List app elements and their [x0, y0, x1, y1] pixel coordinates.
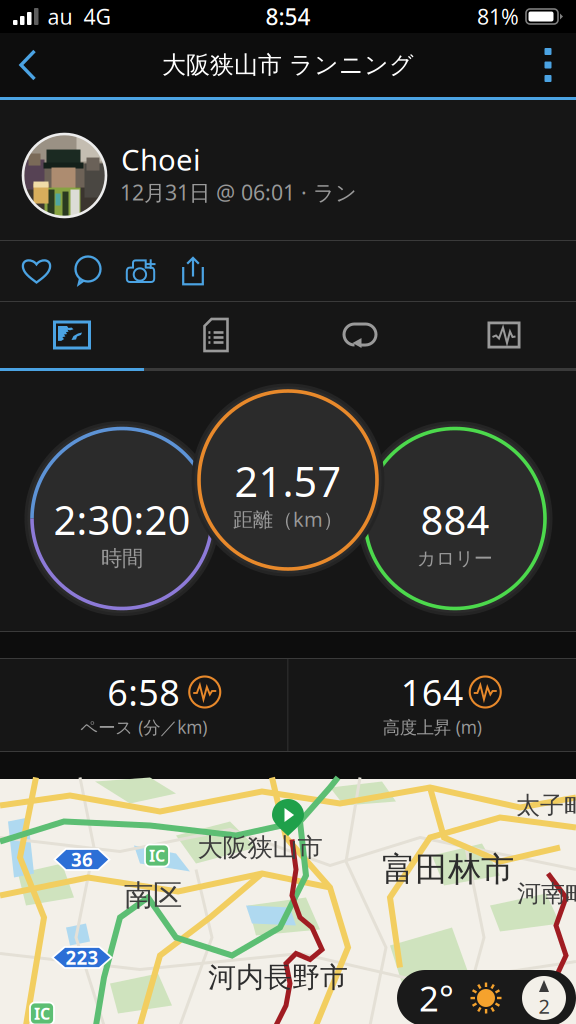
- staticText: 2: [538, 993, 549, 1019]
- staticText: 4G: [83, 2, 111, 31]
- button[interactable]: Comment: [62, 240, 115, 302]
- staticText: 2:30:20: [53, 493, 190, 546]
- staticText: Choei: [121, 140, 201, 179]
- staticText: 164: [401, 668, 464, 716]
- staticText: 富田林市: [382, 849, 514, 890]
- staticText: 高度上昇 (m): [383, 715, 482, 738]
- staticText: カロリー: [417, 547, 493, 570]
- staticText: 81%: [477, 2, 519, 31]
- staticText: 2°: [419, 975, 454, 1021]
- staticText: 河内長野市: [208, 960, 348, 995]
- button[interactable]: Splits: [144, 302, 288, 368]
- staticText: 大阪狭山市: [197, 832, 322, 863]
- staticText: au: [47, 2, 72, 31]
- staticText: 36: [71, 847, 93, 872]
- staticText: ペース (分／km): [80, 715, 207, 738]
- staticText: 8:54: [265, 1, 310, 31]
- button[interactable]: Laps: [288, 302, 432, 368]
- button[interactable]: Analysis: [432, 302, 576, 368]
- button[interactable]: Share: [167, 240, 219, 302]
- button[interactable]: Map: [0, 302, 144, 368]
- staticText: 河南町: [517, 879, 576, 908]
- staticText: 223: [65, 945, 98, 970]
- staticText: 時間: [101, 545, 143, 572]
- button[interactable]: Like: [11, 240, 62, 302]
- staticText: 21.57: [234, 454, 341, 508]
- button[interactable]: Choei: [0, 100, 576, 240]
- staticText: 南区: [124, 877, 182, 913]
- button[interactable]: More options: [520, 33, 576, 97]
- staticText: 6:58: [107, 668, 180, 716]
- staticText: IC: [34, 1003, 50, 1024]
- staticText: 884: [420, 493, 489, 546]
- staticText: IC: [149, 845, 165, 866]
- staticText: 12月31日 @ 06:01 · ラン: [120, 178, 357, 206]
- button[interactable]: Back: [0, 33, 56, 97]
- staticText: 太子町: [516, 791, 576, 820]
- staticText: 大阪狭山市 ランニング: [162, 50, 414, 80]
- staticText: 距離（km）: [233, 506, 343, 532]
- button[interactable]: Add photo: [115, 240, 167, 302]
